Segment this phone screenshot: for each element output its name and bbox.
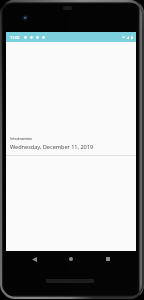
staticText: Fecha de nacimiento [10,137,32,141]
staticText: Wednesday, December 11, 2019 [10,143,94,151]
button[interactable]: Recent apps [98,251,118,267]
button[interactable]: Fecha de nacimiento [6,127,136,159]
button[interactable]: Back [24,251,44,267]
staticText: 11:02 [10,35,20,40]
button[interactable]: Home [61,251,81,267]
